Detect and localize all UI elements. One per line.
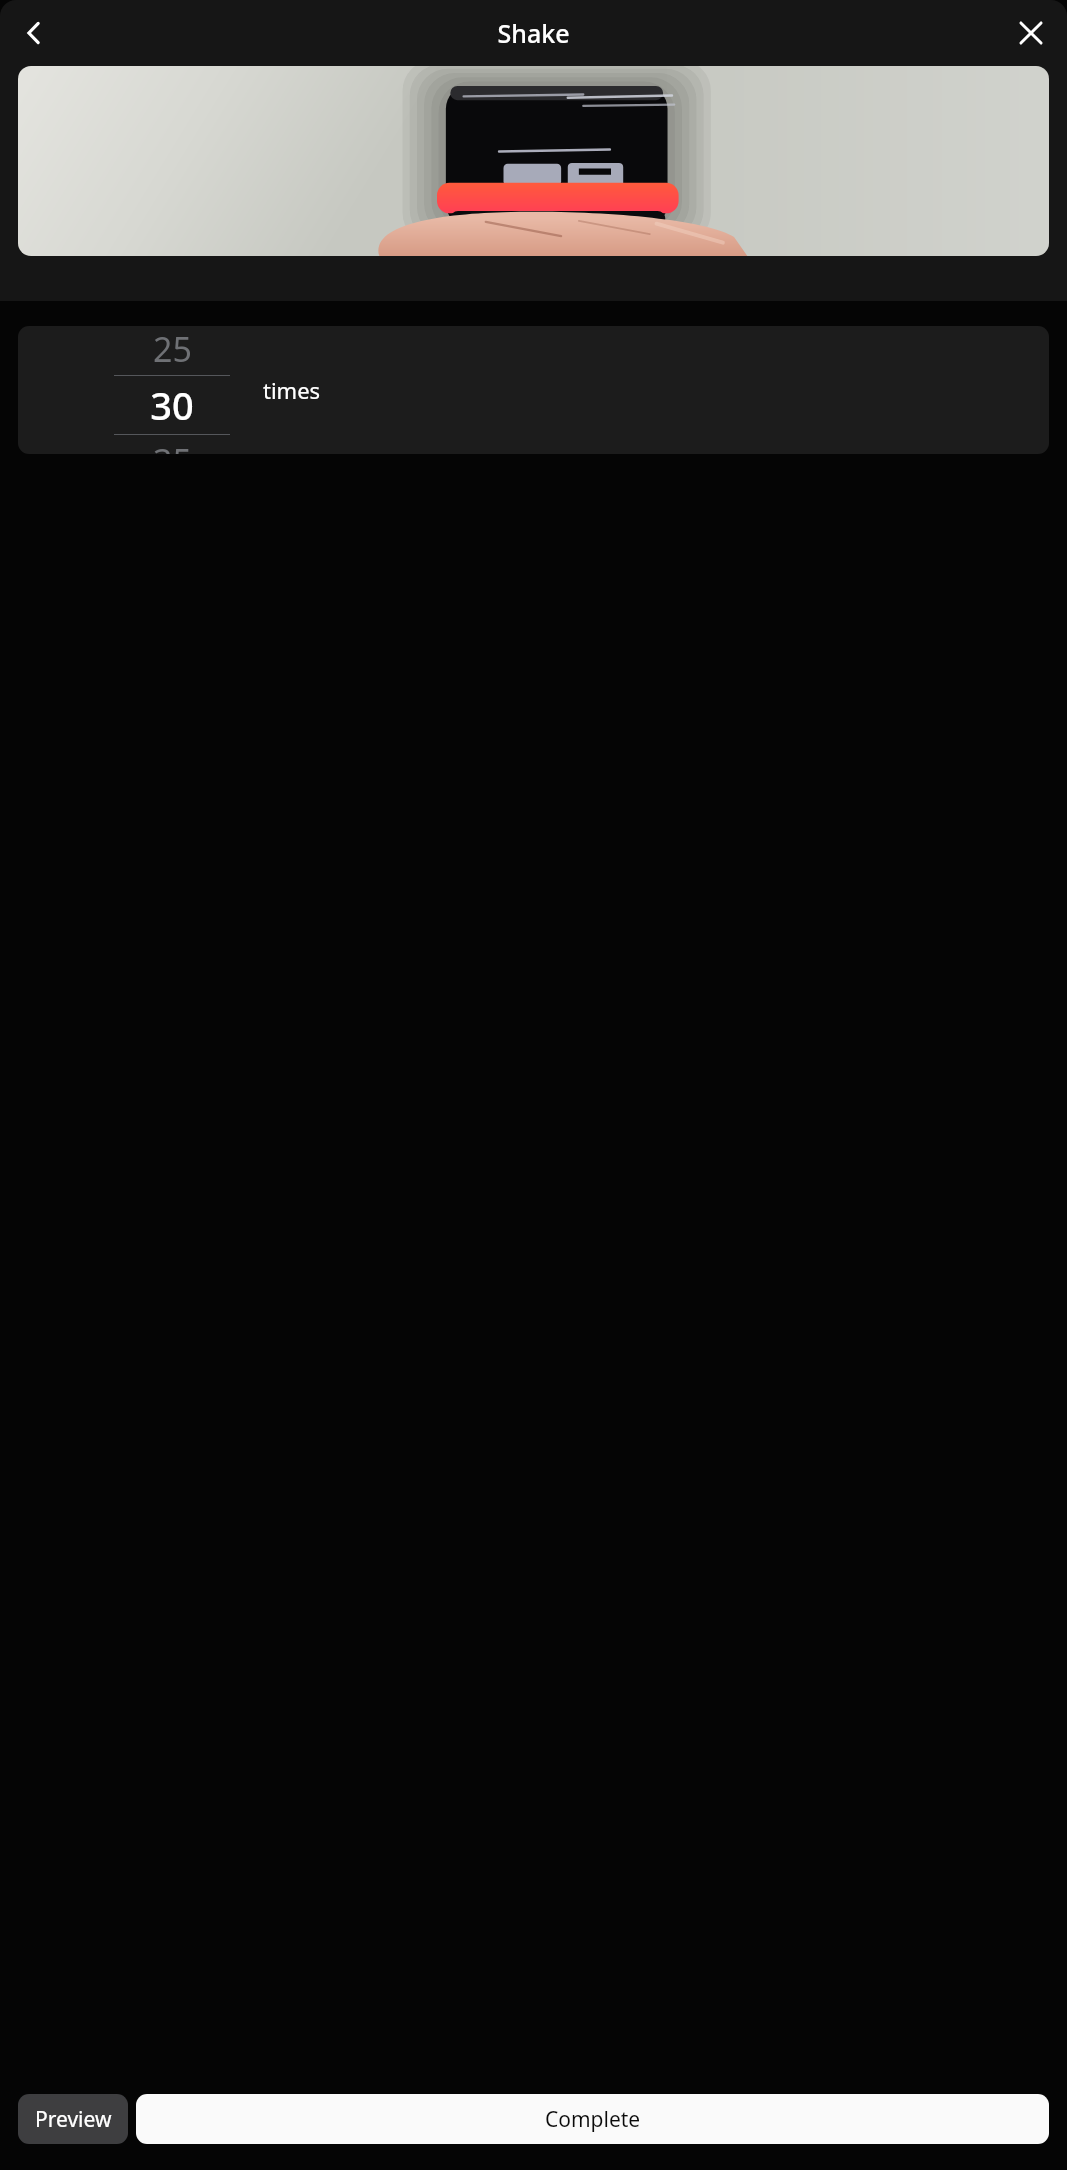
button[interactable]: 25 <box>18 326 1049 454</box>
staticText: Preview <box>35 2105 112 2134</box>
button[interactable]: Preview <box>18 2094 128 2144</box>
staticText: 35 <box>153 438 192 454</box>
button[interactable] <box>18 66 1049 256</box>
button[interactable]: Close <box>1005 7 1057 59</box>
staticText: 30 <box>150 379 194 431</box>
staticText: times <box>263 375 321 405</box>
button[interactable]: Back <box>8 7 60 59</box>
staticText: 25 <box>153 326 192 372</box>
button[interactable]: Complete <box>136 2094 1049 2144</box>
staticText: Shake <box>497 16 570 50</box>
staticText: Complete <box>545 2105 641 2134</box>
